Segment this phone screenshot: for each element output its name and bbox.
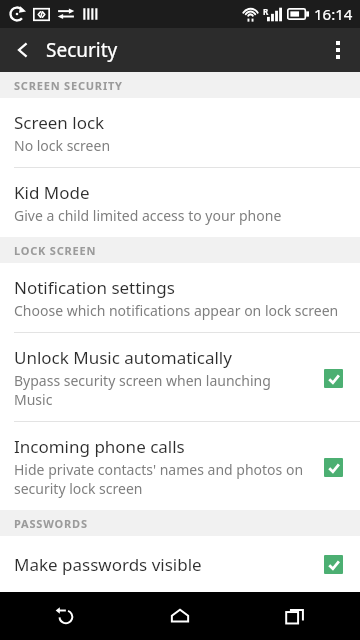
button[interactable]: Recent apps — [245, 592, 345, 640]
staticText: Give a child limited access to your phon… — [14, 206, 282, 225]
button[interactable]: Incoming phone calls — [0, 422, 360, 510]
button[interactable]: Incoming phone calls — [316, 450, 350, 484]
staticText: Notification settings — [14, 276, 175, 299]
button[interactable]: Unlock Music automatically — [316, 361, 350, 395]
staticText: Security — [46, 37, 118, 63]
staticText: Bypass security screen when launching Mu… — [14, 371, 308, 409]
staticText: PASSWORDS — [14, 516, 88, 531]
staticText: SCREEN SECURITY — [14, 78, 123, 93]
staticText: No lock screen — [14, 136, 111, 155]
staticText: Choose which notifications appear on loc… — [14, 301, 339, 320]
staticText: Make passwords visible — [14, 553, 202, 576]
button[interactable]: Unlock Music automatically — [0, 333, 360, 421]
button[interactable]: Screen lock — [0, 98, 360, 167]
button[interactable]: Back — [15, 592, 115, 640]
staticText: 16:14 — [314, 4, 353, 24]
staticText: R — [263, 6, 269, 17]
button[interactable]: Make passwords visible — [316, 552, 350, 576]
button[interactable]: Kid Mode — [0, 168, 360, 237]
staticText: Incoming phone calls — [14, 435, 185, 458]
staticText: Hide private contacts' names and photos … — [14, 460, 308, 498]
staticText: Kid Mode — [14, 181, 90, 204]
button[interactable]: Back — [0, 28, 46, 72]
button[interactable]: Home — [130, 592, 230, 640]
button[interactable]: More options — [316, 28, 360, 72]
staticText: Unlock Music automatically — [14, 346, 232, 369]
staticText: LOCK SCREEN — [14, 243, 97, 258]
button[interactable]: Make passwords visible — [0, 536, 360, 592]
button[interactable]: Notification settings — [0, 263, 360, 332]
staticText: Screen lock — [14, 111, 105, 134]
